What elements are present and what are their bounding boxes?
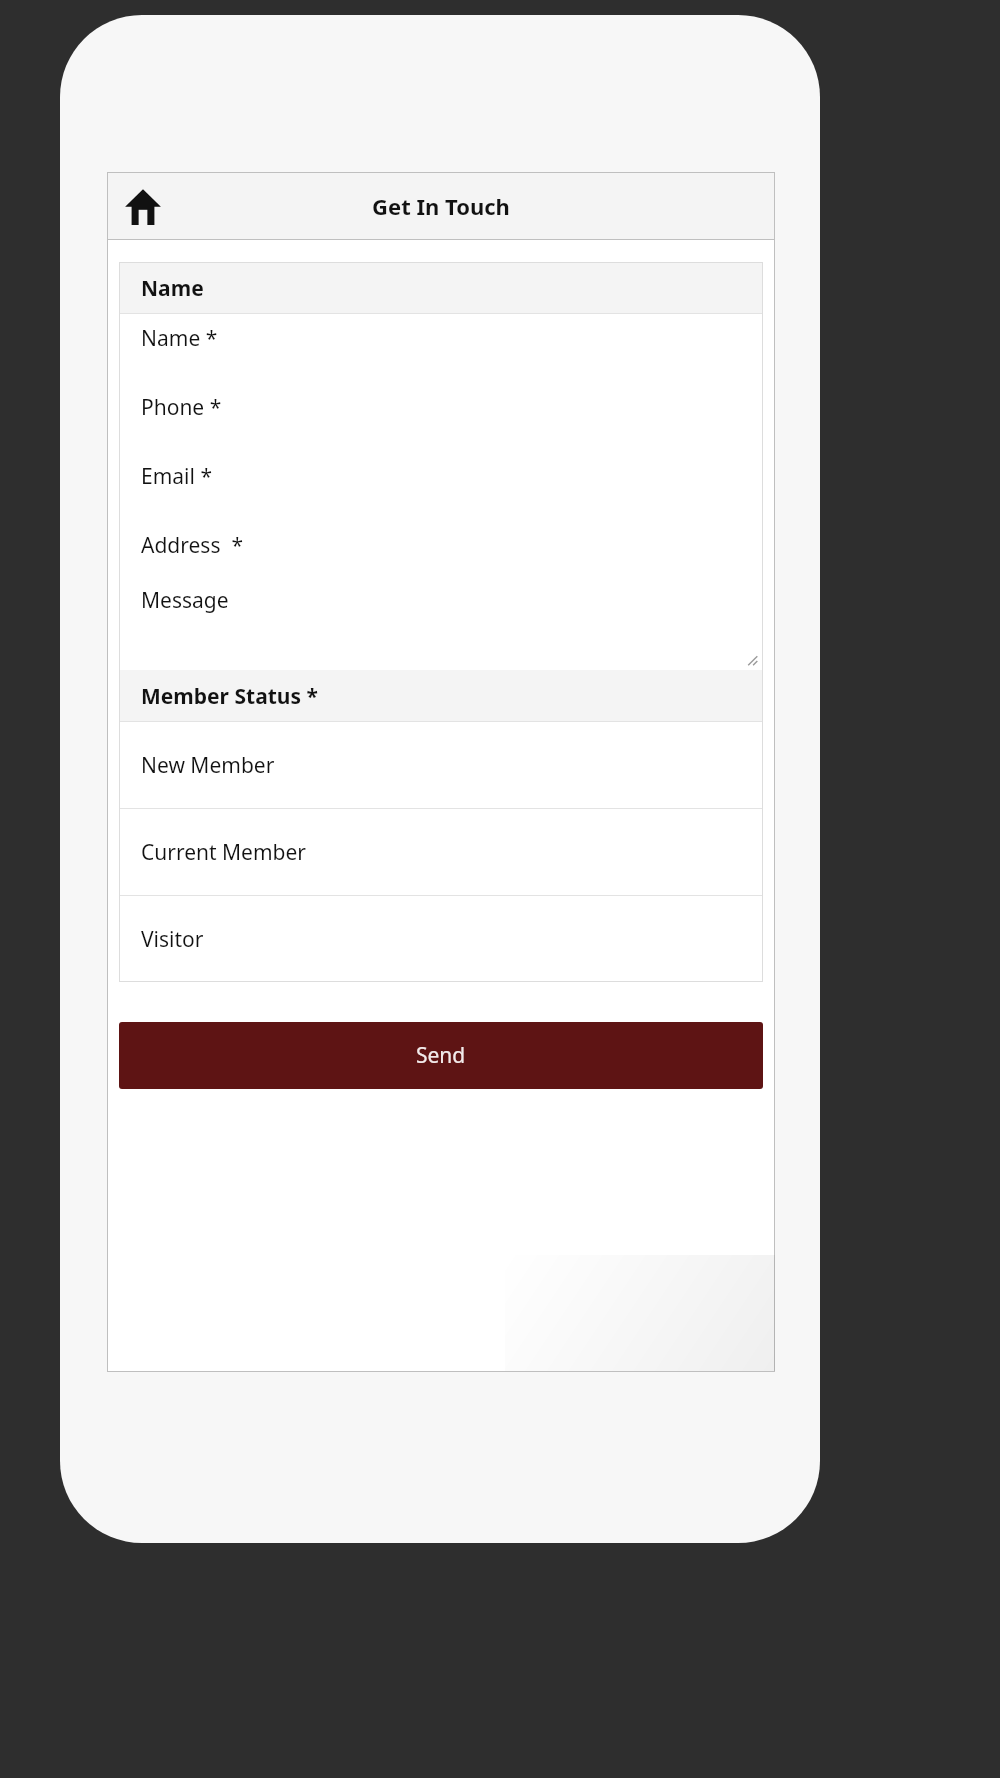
staticText: Message — [141, 586, 229, 615]
staticText: Visitor — [141, 925, 204, 954]
staticText: Phone * — [141, 393, 222, 422]
button[interactable]: Send — [119, 1022, 763, 1089]
staticText: Member Status * — [141, 682, 318, 711]
button[interactable]: Current Member — [119, 809, 763, 895]
button[interactable]: Phone * — [119, 383, 763, 452]
staticText: Name * — [141, 324, 218, 353]
staticText: Current Member — [141, 838, 306, 867]
button[interactable]: New Member — [119, 722, 763, 808]
button[interactable]: Email * — [119, 452, 763, 521]
button[interactable]: Visitor — [119, 896, 763, 982]
button[interactable]: Message — [119, 578, 763, 670]
staticText: Email * — [141, 462, 212, 491]
button[interactable]: Address * — [119, 521, 763, 578]
staticText: Address * — [141, 531, 243, 560]
staticText: Get In Touch — [372, 191, 510, 221]
staticText: Send — [416, 1041, 466, 1070]
staticText: Name — [141, 274, 204, 303]
button[interactable]: Name * — [119, 314, 763, 383]
button[interactable]: Home — [115, 178, 171, 234]
staticText: New Member — [141, 751, 275, 780]
